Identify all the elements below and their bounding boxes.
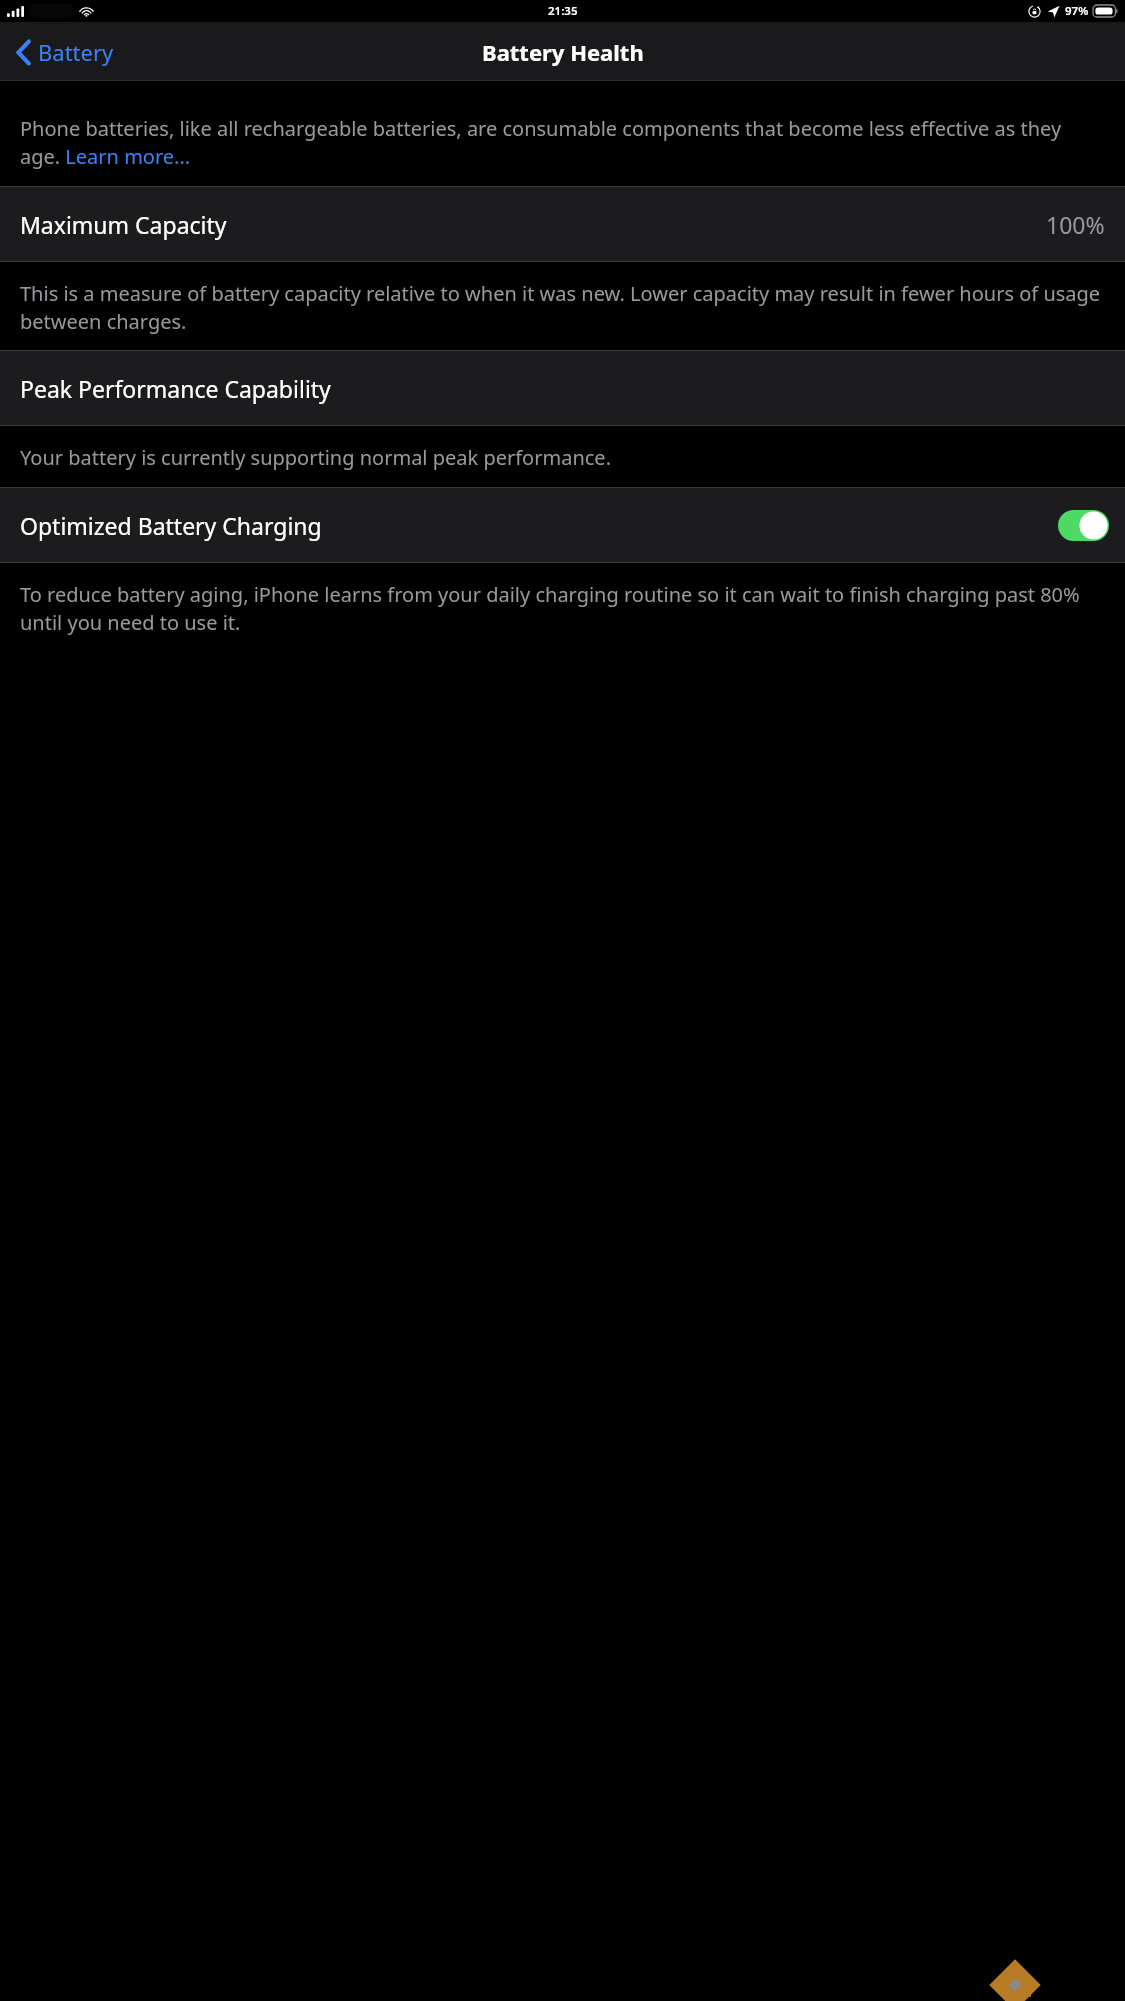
staticText: Optimized Battery Charging xyxy=(20,510,322,541)
button[interactable]: Phone batteries, like all rechargeable b… xyxy=(0,115,1125,169)
staticText: Maximum Capacity xyxy=(20,209,227,240)
staticText: Your battery is currently supporting nor… xyxy=(20,444,611,471)
staticText: Phone batteries, like all rechargeable b… xyxy=(20,115,1105,169)
staticText: Peak Performance Capability xyxy=(20,373,331,404)
staticText: This is a measure of battery capacity re… xyxy=(20,280,1103,334)
button[interactable]: Maximum Capacity xyxy=(0,187,1125,261)
staticText: 21:35 xyxy=(548,3,578,19)
staticText: 97% xyxy=(1065,3,1089,19)
staticText: Battery Health xyxy=(482,37,644,67)
button[interactable]: Optimized Battery Charging xyxy=(0,488,1125,562)
button[interactable]: Peak Performance Capability xyxy=(0,351,1125,425)
staticText: 100% xyxy=(1046,209,1105,240)
staticText: To reduce battery aging, iPhone learns f… xyxy=(20,581,1103,635)
staticText: Battery xyxy=(38,37,114,67)
button[interactable]: Optimized Battery Charging toggle, on xyxy=(1058,510,1109,541)
button[interactable]: Battery xyxy=(12,31,118,73)
